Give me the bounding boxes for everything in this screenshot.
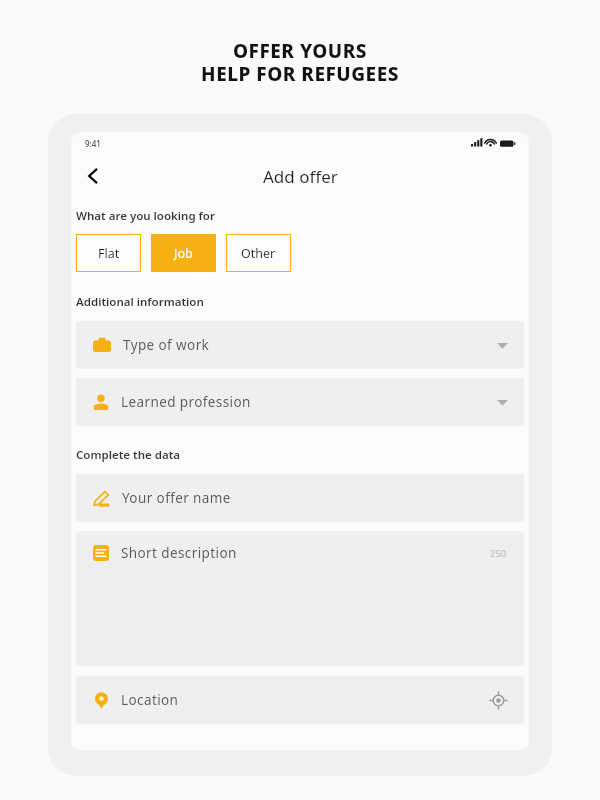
staticText: Other bbox=[241, 245, 276, 262]
button[interactable]: Learned profession bbox=[76, 378, 524, 426]
staticText: Your offer name bbox=[122, 489, 231, 507]
button[interactable]: Location bbox=[76, 676, 524, 724]
button[interactable]: Short description bbox=[76, 531, 524, 666]
button[interactable]: Use my location bbox=[483, 685, 513, 715]
button[interactable]: Flat bbox=[76, 234, 141, 272]
button[interactable]: Other bbox=[226, 234, 291, 272]
staticText: Flat bbox=[98, 245, 120, 262]
staticText: What are you looking for bbox=[76, 208, 215, 224]
staticText: 250 bbox=[490, 547, 507, 560]
staticText: Learned profession bbox=[121, 393, 251, 411]
staticText: 9:41 bbox=[85, 138, 101, 149]
staticText: OFFER YOURS HELP FOR REFUGEES bbox=[201, 38, 399, 87]
staticText: Add offer bbox=[263, 165, 338, 188]
staticText: Additional information bbox=[76, 294, 204, 310]
button[interactable]: Job bbox=[151, 234, 216, 272]
staticText: Short description bbox=[121, 544, 237, 562]
staticText: Job bbox=[174, 245, 193, 262]
staticText: Location bbox=[121, 691, 179, 709]
button[interactable]: Your offer name bbox=[76, 474, 524, 522]
staticText: Complete the data bbox=[76, 447, 181, 463]
button[interactable]: Back bbox=[75, 158, 111, 194]
staticText: Type of work bbox=[123, 336, 210, 354]
button[interactable]: Type of work bbox=[76, 321, 524, 369]
